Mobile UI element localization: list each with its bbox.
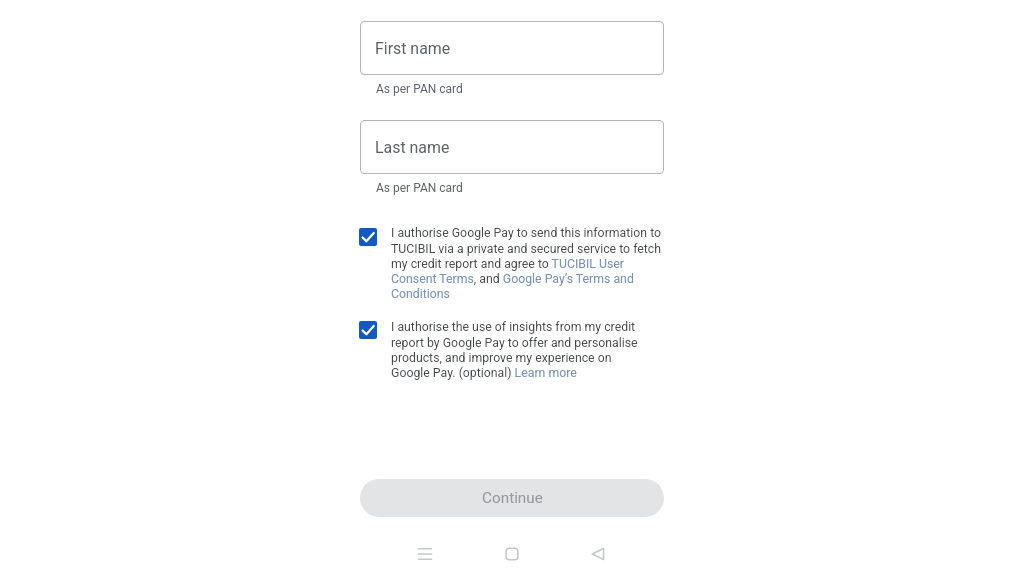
button[interactable]: Back xyxy=(583,539,613,569)
staticText: Continue xyxy=(482,489,543,507)
staticText: As per PAN card xyxy=(376,82,463,96)
button[interactable]: Checkbox xyxy=(359,321,377,339)
button[interactable]: Last name xyxy=(360,120,664,174)
staticText: Last name xyxy=(375,138,450,157)
staticText: First name xyxy=(375,39,451,58)
staticText: I authorise the use of insights from my … xyxy=(391,320,638,380)
button[interactable]: First name xyxy=(360,21,664,75)
button[interactable]: Recent apps xyxy=(410,539,440,569)
staticText: I authorise Google Pay to send this info… xyxy=(391,226,662,301)
button[interactable]: Home xyxy=(497,539,527,569)
staticText: As per PAN card xyxy=(376,181,463,195)
button[interactable]: Continue xyxy=(360,479,664,517)
button[interactable]: Checkbox xyxy=(359,228,377,246)
